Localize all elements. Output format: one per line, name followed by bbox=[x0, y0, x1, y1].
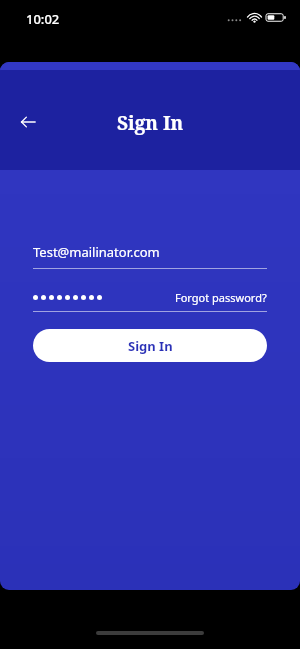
button[interactable]: Back bbox=[8, 102, 48, 142]
staticText: Test@mailinator.com bbox=[33, 243, 160, 261]
button[interactable] bbox=[33, 283, 175, 311]
staticText: Sign In bbox=[117, 110, 184, 136]
staticText: 10:02 bbox=[26, 10, 60, 28]
button[interactable]: Test@mailinator.com bbox=[33, 236, 267, 268]
staticText: Sign In bbox=[128, 337, 173, 355]
button[interactable]: Sign In bbox=[33, 329, 267, 362]
button[interactable]: Forgot password? bbox=[175, 283, 267, 311]
staticText: Forgot password? bbox=[175, 290, 267, 305]
